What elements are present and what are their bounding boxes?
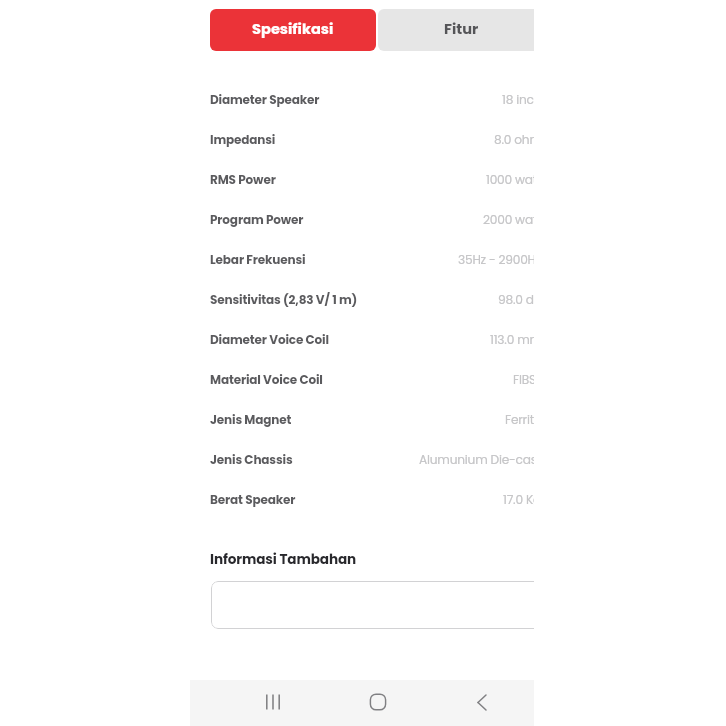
button[interactable]: Diameter Speaker <box>210 79 544 119</box>
staticText: Diameter Speaker <box>210 91 320 108</box>
staticText: Jenis Magnet <box>210 411 292 428</box>
button[interactable]: Recent apps <box>251 680 295 724</box>
staticText: 18 inch <box>502 91 542 108</box>
button[interactable]: Lebar Frekuensi <box>210 239 544 279</box>
staticText: Program Power <box>210 211 304 228</box>
staticText: Sensitivitas (2,83 V/ 1 m) <box>210 291 358 308</box>
staticText: 113.0 mm <box>490 331 542 348</box>
button[interactable]: Back <box>460 680 504 724</box>
staticText: Jenis Chassis <box>210 451 293 468</box>
staticText: 8.0 ohm <box>494 131 542 148</box>
staticText: Fitur <box>444 19 479 39</box>
staticText: Lebar Frekuensi <box>210 251 306 268</box>
button[interactable]: Diameter Voice Coil <box>210 319 544 359</box>
staticText: 17.0 Kg <box>503 491 542 508</box>
staticText: 2000 watt <box>483 211 542 228</box>
button[interactable]: RMS Power <box>210 159 544 199</box>
staticText: Informasi Tambahan <box>210 550 357 569</box>
button[interactable]: Program Power <box>210 199 544 239</box>
button[interactable]: Sensitivitas (2,83 V/ 1 m) <box>210 279 544 319</box>
staticText: Ferrite <box>505 411 542 428</box>
staticText: Spesifikasi <box>252 19 334 39</box>
staticText: Material Voice Coil <box>210 371 323 388</box>
button[interactable]: Jenis Magnet <box>210 399 544 439</box>
staticText: Alumunium Die-cast <box>419 451 542 468</box>
staticText: 35Hz - 2900Hz <box>458 251 542 268</box>
staticText: Berat Speaker <box>210 491 296 508</box>
button[interactable]: Impedansi <box>210 119 544 159</box>
staticText: Diameter Voice Coil <box>210 331 329 348</box>
button[interactable]: Home <box>356 680 400 724</box>
button[interactable]: Spesifikasi <box>210 9 376 51</box>
staticText: Impedansi <box>210 131 276 148</box>
button[interactable]: Material Voice Coil <box>210 359 544 399</box>
staticText: 1000 watt <box>486 171 542 188</box>
button[interactable]: Fitur <box>378 9 544 51</box>
staticText: FIBS <box>513 371 542 388</box>
button[interactable]: Berat Speaker <box>210 479 544 519</box>
button[interactable]: Jenis Chassis <box>210 439 544 479</box>
button[interactable] <box>211 581 543 629</box>
staticText: 98.0 dB <box>498 291 542 308</box>
staticText: RMS Power <box>210 171 276 188</box>
